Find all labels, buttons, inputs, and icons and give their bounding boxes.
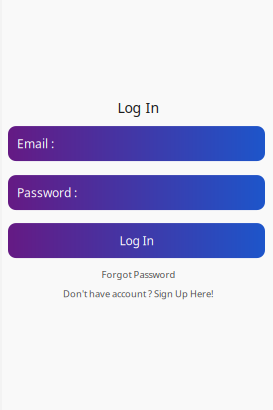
button[interactable]: Password :	[8, 175, 265, 210]
staticText: Email :	[17, 136, 54, 151]
staticText: Log In	[119, 233, 153, 248]
button[interactable]: Email :	[8, 126, 265, 161]
staticText: Forgot Password	[101, 268, 175, 280]
button[interactable]: Don't have account ? Sign Up Here!	[59, 287, 214, 300]
staticText: Log In	[117, 98, 159, 117]
staticText: Don't have account ? Sign Up Here!	[63, 287, 214, 300]
button[interactable]: Log In	[8, 223, 265, 258]
button[interactable]: Forgot Password	[97, 268, 175, 280]
staticText: Password :	[17, 185, 77, 200]
